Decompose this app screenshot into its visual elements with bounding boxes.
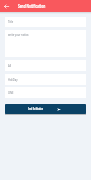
staticText: ONE — [8, 91, 14, 95]
button[interactable]: ONE — [5, 87, 86, 98]
button[interactable]: Back — [2, 2, 11, 11]
button[interactable]: Send Notification — [5, 104, 86, 114]
button[interactable]: All — [5, 60, 86, 71]
staticText: All — [8, 64, 11, 68]
staticText: write your notice. — [8, 33, 30, 37]
button[interactable]: Title — [5, 17, 86, 27]
staticText: Send Notification — [28, 107, 43, 111]
staticText: HoliDay — [8, 78, 18, 82]
button[interactable]: HoliDay — [5, 74, 86, 85]
staticText: Title — [8, 20, 14, 24]
button[interactable]: write your notice. — [5, 30, 86, 57]
staticText: Send Notification — [18, 3, 46, 9]
